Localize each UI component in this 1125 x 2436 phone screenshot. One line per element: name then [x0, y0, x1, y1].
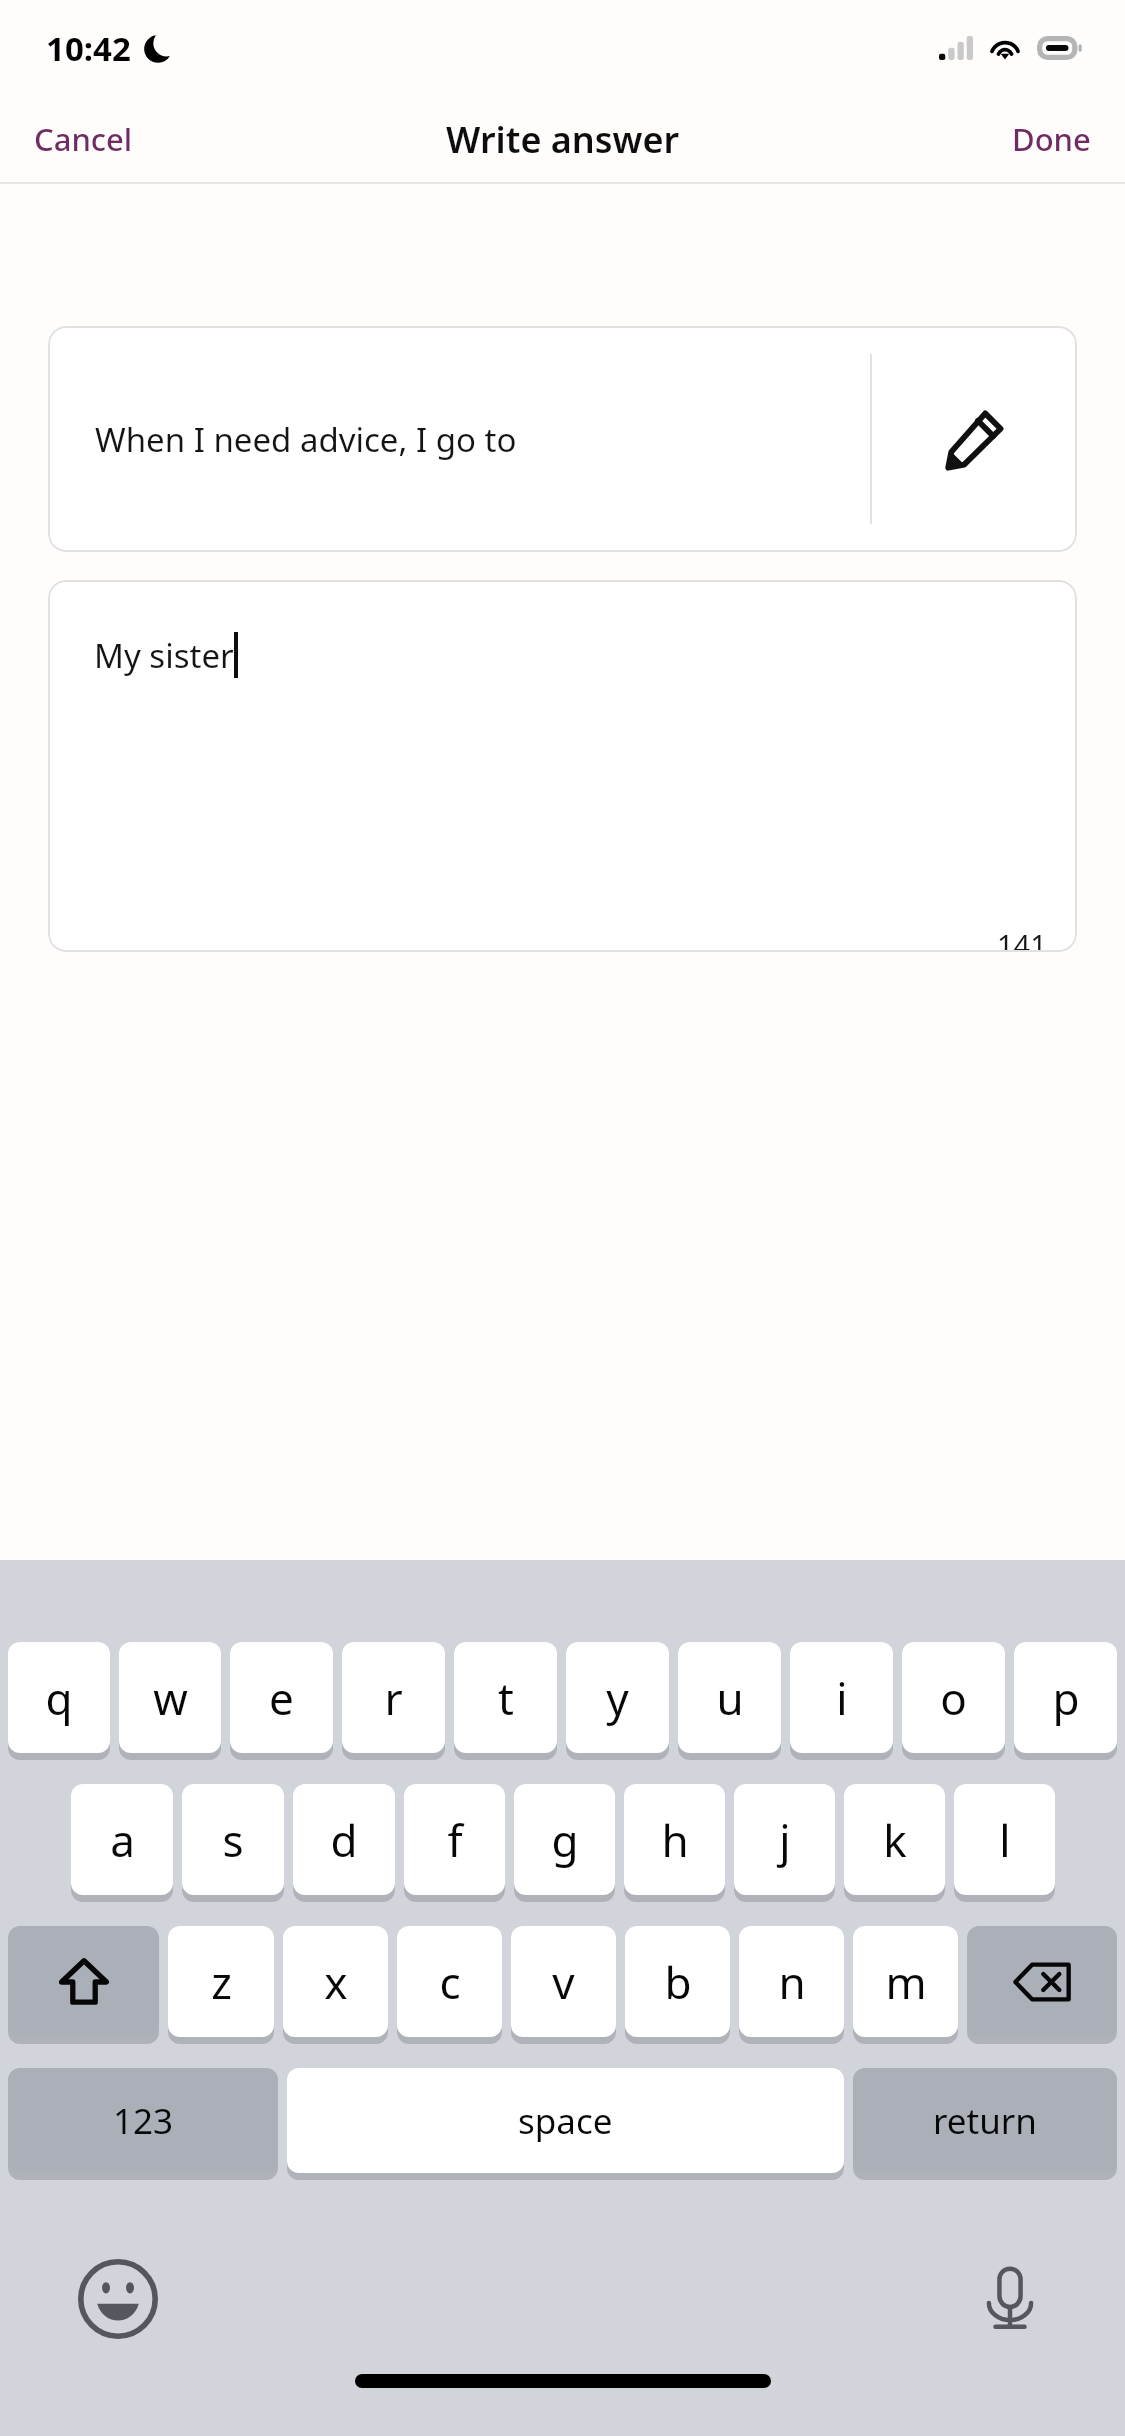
button[interactable]: Cancel — [0, 102, 167, 176]
staticText: w — [153, 1668, 188, 1728]
staticText: v — [552, 1952, 575, 2012]
staticText: z — [211, 1952, 232, 2012]
staticText: i — [836, 1668, 848, 1728]
button[interactable]: t — [454, 1642, 557, 1760]
staticText: Done — [1012, 118, 1091, 160]
button[interactable]: o — [902, 1642, 1005, 1760]
staticText: k — [883, 1810, 907, 1870]
button[interactable]: Edit prompt — [872, 326, 1077, 552]
staticText: y — [606, 1668, 629, 1728]
staticText: a — [110, 1810, 135, 1870]
button[interactable]: return — [853, 2068, 1117, 2180]
button[interactable]: s — [182, 1784, 284, 1902]
button[interactable]: Shift — [8, 1926, 159, 2044]
button[interactable]: Done — [978, 102, 1125, 176]
button[interactable]: v — [511, 1926, 616, 2044]
staticText: Write answer — [446, 115, 680, 164]
button[interactable]: c — [397, 1926, 502, 2044]
button[interactable]: k — [844, 1784, 945, 1902]
staticText: p — [1052, 1668, 1080, 1728]
staticText: 123 — [113, 2097, 174, 2145]
button[interactable]: b — [625, 1926, 730, 2044]
staticText: 10:42 — [46, 26, 131, 71]
staticText: r — [384, 1668, 403, 1728]
button[interactable]: d — [293, 1784, 395, 1902]
staticText: x — [324, 1952, 348, 2012]
button[interactable]: j — [734, 1784, 835, 1902]
button[interactable]: p — [1014, 1642, 1117, 1760]
staticText: space — [518, 2097, 613, 2145]
staticText: j — [779, 1810, 791, 1870]
staticText: m — [885, 1952, 927, 2012]
button[interactable]: x — [283, 1926, 388, 2044]
button[interactable]: n — [739, 1926, 844, 2044]
button[interactable]: i — [790, 1642, 893, 1760]
staticText: Cancel — [34, 118, 133, 160]
button[interactable]: l — [954, 1784, 1055, 1902]
button[interactable]: q — [8, 1642, 110, 1760]
button[interactable]: Emoji keyboard — [78, 2259, 158, 2339]
button[interactable]: w — [119, 1642, 221, 1760]
button[interactable]: z — [168, 1926, 274, 2044]
button[interactable]: f — [404, 1784, 505, 1902]
button[interactable]: a — [71, 1784, 173, 1902]
button[interactable]: When I need advice, I go to — [48, 326, 1077, 552]
button[interactable]: 123 — [8, 2068, 278, 2180]
staticText: q — [45, 1668, 73, 1728]
staticText: l — [999, 1810, 1011, 1870]
staticText: return — [933, 2097, 1037, 2145]
button[interactable]: e — [230, 1642, 333, 1760]
staticText: t — [498, 1668, 514, 1728]
button[interactable]: g — [514, 1784, 615, 1902]
button[interactable]: Dictation — [977, 2266, 1043, 2332]
staticText: h — [661, 1810, 689, 1870]
staticText: When I need advice, I go to — [95, 417, 517, 462]
staticText: My sister — [94, 633, 234, 678]
button[interactable]: space — [287, 2068, 844, 2180]
staticText: e — [269, 1668, 294, 1728]
button[interactable]: h — [624, 1784, 725, 1902]
button[interactable]: My sister — [48, 580, 1077, 952]
staticText: d — [330, 1810, 358, 1870]
staticText: c — [439, 1952, 461, 2012]
button[interactable]: u — [678, 1642, 781, 1760]
staticText: 141 — [997, 925, 1047, 952]
staticText: u — [716, 1668, 744, 1728]
button[interactable]: y — [566, 1642, 669, 1760]
staticText: s — [222, 1810, 244, 1870]
staticText: g — [551, 1810, 579, 1870]
staticText: o — [940, 1668, 967, 1728]
button[interactable]: m — [853, 1926, 958, 2044]
staticText: b — [664, 1952, 692, 2012]
button[interactable]: r — [342, 1642, 445, 1760]
staticText: f — [447, 1810, 463, 1870]
staticText: n — [778, 1952, 806, 2012]
button[interactable]: Backspace — [967, 1926, 1117, 2044]
